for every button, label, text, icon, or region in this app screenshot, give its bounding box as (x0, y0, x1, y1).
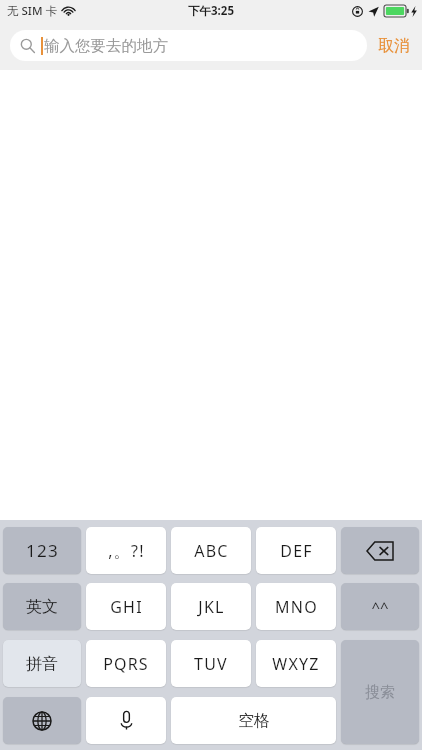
button[interactable]: GHI (86, 583, 166, 630)
staticText: TUV (194, 653, 228, 675)
button[interactable]: ^^ (341, 583, 419, 630)
button[interactable]: PQRS (86, 640, 166, 687)
button[interactable]: DEF (256, 527, 336, 574)
staticText: 下午3:25 (188, 3, 234, 19)
staticText: JKL (198, 596, 225, 618)
staticText: 取消 (378, 36, 410, 56)
button[interactable]: JKL (171, 583, 251, 630)
button[interactable]: 拼音 (3, 640, 81, 687)
staticText: 123 (26, 539, 59, 562)
staticText: ABC (194, 540, 229, 562)
button[interactable]: ABC (171, 527, 251, 574)
button[interactable]: 123 (3, 527, 81, 574)
staticText: ,。?! (108, 540, 145, 562)
staticText: 空格 (238, 711, 270, 731)
button[interactable]: MNO (256, 583, 336, 630)
button[interactable]: WXYZ (256, 640, 336, 687)
staticText: 拼音 (26, 654, 58, 674)
button[interactable]: ,。?! (86, 527, 166, 574)
staticText: GHI (110, 596, 143, 618)
staticText: 输入您要去的地方 (44, 36, 168, 56)
staticText: 搜索 (365, 683, 395, 702)
button[interactable]: 搜索 (341, 640, 419, 744)
button[interactable]: Switch keyboard (3, 697, 81, 744)
staticText: PQRS (103, 653, 149, 675)
staticText: MNO (275, 596, 318, 618)
staticText: ^^ (371, 597, 389, 617)
staticText: 英文 (26, 597, 58, 617)
button[interactable]: 输入您要去的地方 (10, 30, 367, 61)
button[interactable]: 取消 (366, 21, 422, 70)
button[interactable]: Delete (341, 527, 419, 574)
staticText: DEF (280, 540, 313, 562)
staticText: WXYZ (272, 653, 320, 675)
button[interactable]: 英文 (3, 583, 81, 630)
button[interactable]: 空格 (171, 697, 336, 744)
button[interactable]: TUV (171, 640, 251, 687)
button[interactable]: Voice input (86, 697, 166, 744)
staticText: 无 SIM 卡 (7, 3, 57, 19)
